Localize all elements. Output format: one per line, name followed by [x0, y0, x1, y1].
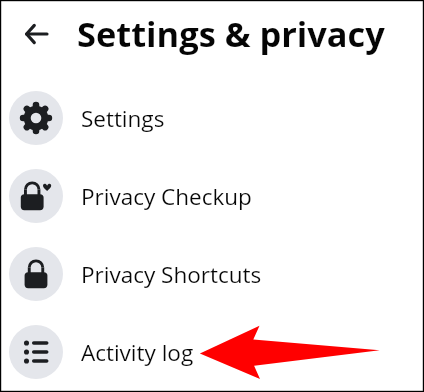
button[interactable]: Privacy Checkup	[0, 157, 424, 235]
button[interactable]: Back	[15, 10, 63, 58]
button[interactable]: Privacy Shortcuts	[0, 235, 424, 313]
staticText: Privacy Shortcuts	[81, 259, 262, 290]
staticText: Settings	[81, 103, 165, 134]
staticText: Activity log	[81, 337, 194, 368]
button[interactable]: Settings	[0, 79, 424, 157]
button[interactable]: Activity log	[0, 313, 424, 391]
staticText: Privacy Checkup	[81, 181, 252, 212]
staticText: Settings & privacy	[77, 10, 385, 57]
